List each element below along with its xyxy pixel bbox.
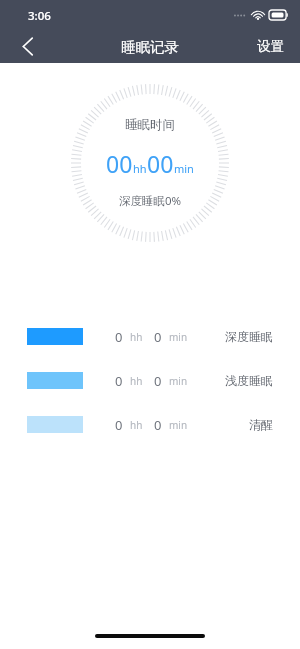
staticText: 0 <box>115 416 123 433</box>
staticText: 0 <box>154 328 162 345</box>
staticText: min <box>174 161 194 176</box>
staticText: hh <box>130 374 143 388</box>
staticText: 0 <box>154 372 162 389</box>
button[interactable]: 0 <box>0 416 300 433</box>
staticText: min <box>169 374 188 388</box>
staticText: 00 <box>147 148 174 179</box>
button[interactable]: 0 <box>0 328 300 345</box>
staticText: 0 <box>115 372 123 389</box>
staticText: 清醒 <box>249 417 273 432</box>
staticText: 0 <box>115 328 123 345</box>
button[interactable]: 0 <box>0 372 300 389</box>
button[interactable]: 返回 <box>8 30 46 63</box>
staticText: hh <box>130 418 143 432</box>
staticText: 0 <box>154 416 162 433</box>
staticText: hh <box>133 161 147 176</box>
button[interactable]: 设置 <box>253 32 288 61</box>
staticText: min <box>169 418 188 432</box>
staticText: 设置 <box>257 38 284 55</box>
staticText: 3:06 <box>28 8 51 24</box>
staticText: 浅度睡眠 <box>225 373 273 388</box>
staticText: 睡眠时间 <box>125 117 175 133</box>
staticText: 睡眠记录 <box>121 38 179 56</box>
staticText: 00 <box>106 148 133 179</box>
staticText: min <box>169 330 188 344</box>
staticText: hh <box>130 330 143 344</box>
staticText: 深度睡眠 <box>225 329 273 344</box>
staticText: 深度睡眠0% <box>119 193 182 209</box>
